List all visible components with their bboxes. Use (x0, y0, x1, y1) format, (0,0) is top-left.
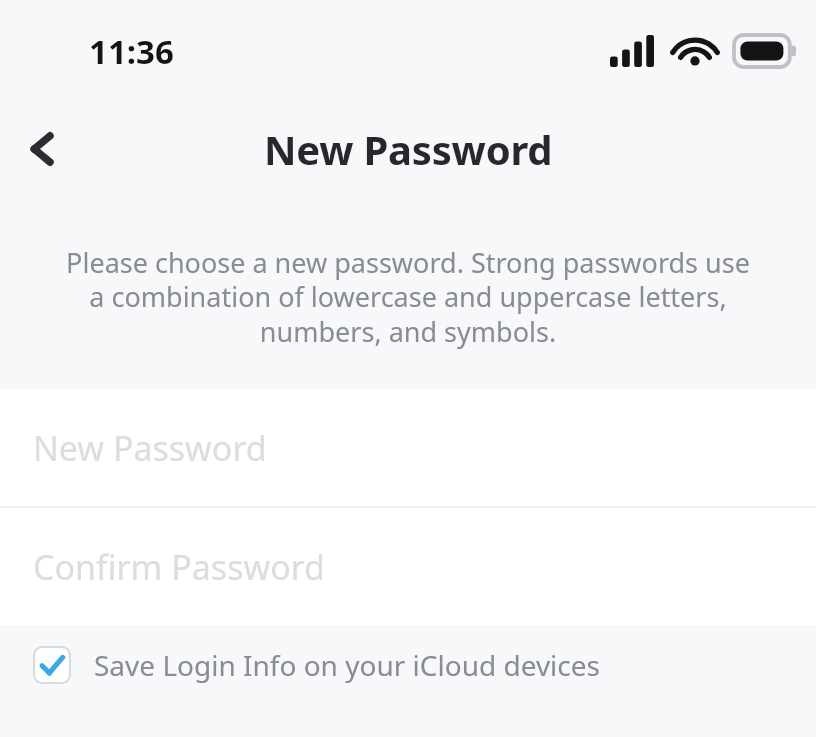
staticText: 11:36 (89, 29, 174, 74)
staticText: Confirm Password (33, 544, 325, 590)
button[interactable]: Confirm Password (0, 508, 816, 625)
staticText: Save Login Info on your iCloud devices (94, 646, 600, 684)
staticText: New Password (264, 122, 553, 176)
button[interactable]: Back (0, 106, 86, 192)
button[interactable]: New Password (0, 389, 816, 506)
button[interactable]: Save Login Info on your iCloud devices (0, 625, 816, 705)
staticText: New Password (33, 425, 267, 471)
staticText: Please choose a new password. Strong pas… (56, 244, 760, 350)
